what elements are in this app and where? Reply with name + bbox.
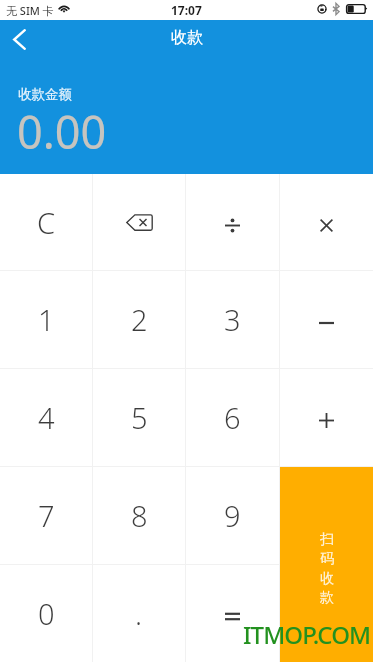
staticText: 扫 [320, 531, 334, 549]
other: 乘 [320, 219, 333, 232]
other: 除 [225, 218, 240, 233]
button[interactable]: 3 [186, 271, 279, 368]
button[interactable]: 除 [186, 174, 279, 270]
button[interactable]: 等于 [186, 565, 279, 662]
staticText: 收款金额 [18, 86, 72, 103]
staticText: 1 [38, 300, 55, 339]
button[interactable]: 加 [280, 369, 373, 466]
staticText: 5 [131, 398, 148, 437]
other: 加 [319, 413, 334, 428]
button[interactable]: . [93, 565, 185, 662]
button[interactable]: 1 [0, 271, 92, 368]
button[interactable]: 6 [186, 369, 279, 466]
staticText: 码 [320, 550, 334, 568]
staticText: 收款 [171, 28, 203, 48]
staticText: ITMOP.COM [243, 618, 371, 651]
button[interactable]: 0 [0, 565, 92, 662]
staticText: . [135, 594, 143, 633]
staticText: 7 [38, 496, 55, 535]
staticText: 3 [224, 300, 241, 339]
staticText: 0.00 [17, 101, 107, 162]
staticText: 17:07 [171, 2, 202, 18]
staticText: 8 [131, 496, 148, 535]
other: 删除 [126, 214, 153, 231]
button[interactable]: 2 [93, 271, 185, 368]
staticText: 2 [131, 300, 148, 339]
staticText: 6 [224, 398, 241, 437]
staticText: 收 [320, 570, 334, 588]
button[interactable] [280, 565, 373, 662]
button[interactable]: 扫 [280, 467, 373, 662]
button[interactable]: 9 [186, 467, 279, 564]
staticText: 无 SIM 卡 [6, 3, 54, 18]
button[interactable] [280, 467, 373, 564]
other: 减 [319, 321, 334, 325]
staticText: 9 [224, 496, 241, 535]
button[interactable]: 4 [0, 369, 92, 466]
button[interactable]: C [0, 174, 92, 270]
button[interactable]: 8 [93, 467, 185, 564]
staticText: 4 [38, 398, 55, 437]
staticText: 0 [38, 594, 55, 633]
button[interactable]: 减 [280, 271, 373, 368]
button[interactable]: 5 [93, 369, 185, 466]
staticText: C [37, 203, 56, 242]
staticText: 款 [320, 589, 334, 607]
button[interactable]: 乘 [280, 174, 373, 270]
button[interactable]: 返回 [0, 20, 38, 58]
button[interactable]: 删除 [93, 174, 185, 270]
other: 等于 [225, 612, 240, 621]
button[interactable]: 7 [0, 467, 92, 564]
